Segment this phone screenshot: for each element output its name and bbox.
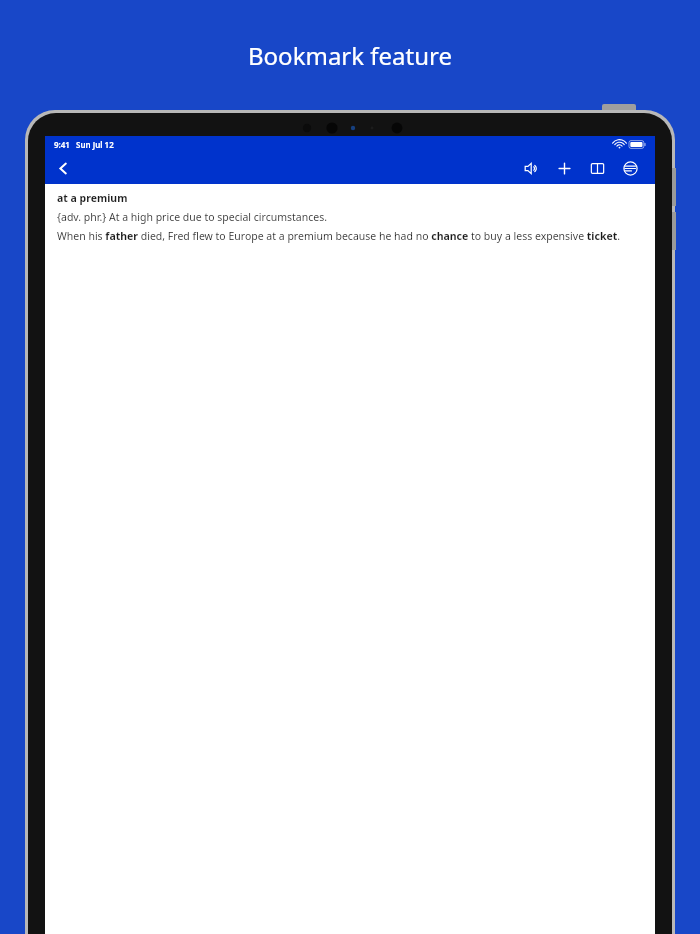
staticText: Sun Jul 12 — [76, 139, 114, 150]
staticText: When his father died, Fred flew to Europ… — [57, 229, 621, 243]
button[interactable]: Menu — [614, 153, 647, 184]
button[interactable]: Back — [45, 153, 81, 184]
staticText: {adv. phr.} At a high price due to speci… — [57, 210, 328, 224]
button[interactable]: Page view — [581, 153, 614, 184]
staticText: Bookmark feature — [248, 39, 453, 72]
button[interactable]: Add bookmark — [548, 153, 581, 184]
button[interactable]: Pronounce — [515, 153, 548, 184]
staticText: 9:41 — [54, 139, 70, 150]
staticText: at a premium — [57, 191, 128, 205]
